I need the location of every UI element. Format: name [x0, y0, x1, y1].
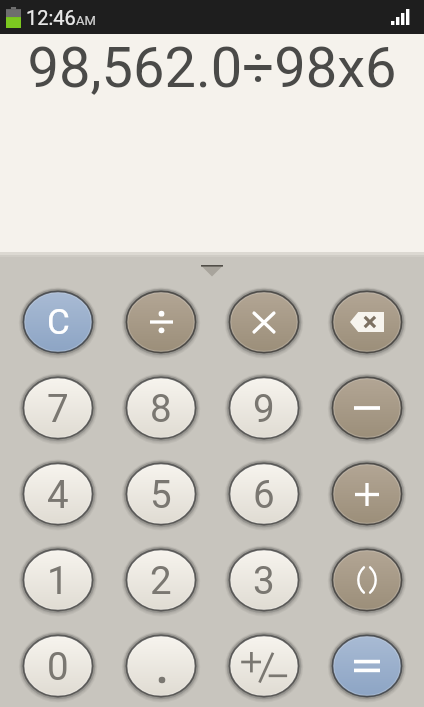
button[interactable]: Backspace	[330, 289, 404, 355]
staticText: C	[47, 302, 70, 343]
button[interactable]: Plus minus	[227, 633, 301, 699]
staticText: 4	[47, 472, 69, 517]
staticText: 3	[253, 558, 275, 603]
button[interactable]: Equals	[330, 633, 404, 699]
button[interactable]: 0	[21, 633, 95, 699]
staticText: 0	[47, 644, 69, 689]
button[interactable]: 7	[21, 375, 95, 441]
staticText: 8	[150, 386, 172, 431]
staticText: 7	[47, 386, 69, 431]
button[interactable]: 4	[21, 461, 95, 527]
button[interactable]: 8	[124, 375, 198, 441]
button[interactable]: 9	[227, 375, 301, 441]
button[interactable]: 1	[21, 547, 95, 613]
button[interactable]: 2	[124, 547, 198, 613]
button[interactable]: 5	[124, 461, 198, 527]
button[interactable]: Divide	[124, 289, 198, 355]
staticText: 6	[253, 472, 275, 517]
button[interactable]: 6	[227, 461, 301, 527]
staticText: 98,562.0÷98x6	[0, 35, 424, 101]
staticText: 1	[47, 558, 69, 603]
staticText: 9	[253, 386, 275, 431]
button[interactable]: Minus	[330, 375, 404, 441]
button[interactable]: Parentheses	[330, 547, 404, 613]
button[interactable]: Clear	[21, 289, 95, 355]
staticText: 5	[150, 472, 172, 517]
button[interactable]: Decimal point	[124, 633, 198, 699]
staticText: 12:46	[26, 6, 76, 29]
staticText: 2	[150, 558, 172, 603]
button[interactable]: 3	[227, 547, 301, 613]
button[interactable]: Plus	[330, 461, 404, 527]
staticText: AM	[76, 13, 96, 28]
button[interactable]: Multiply	[227, 289, 301, 355]
